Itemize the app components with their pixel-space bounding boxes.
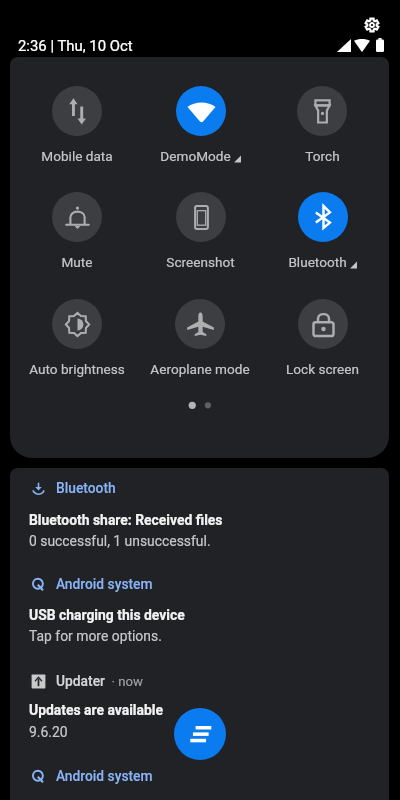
button[interactable]: DemoMode <box>139 86 261 172</box>
staticText: 0 successful, 1 unsuccessful. <box>29 533 211 549</box>
button[interactable]: Mobile data <box>16 86 138 172</box>
staticText: Updater <box>56 673 105 689</box>
staticText: Screenshot <box>166 254 235 270</box>
button[interactable]: Bluetooth <box>10 478 389 551</box>
button[interactable]: Settings <box>364 17 380 33</box>
staticText: Bluetooth <box>56 480 116 496</box>
staticText: Mute <box>61 254 93 270</box>
staticText: Android system <box>56 768 153 784</box>
button[interactable]: Manage notifications <box>174 708 226 760</box>
button[interactable]: Torch <box>261 86 383 172</box>
staticText: Android system <box>56 576 153 592</box>
button[interactable]: Auto brightness <box>16 299 138 385</box>
staticText: Updates are available <box>29 702 163 718</box>
staticText: Bluetooth share: Received files <box>29 512 223 528</box>
staticText: · now <box>105 674 143 689</box>
button[interactable]: Screenshot <box>139 192 261 278</box>
staticText: 9.6.20 <box>29 724 68 740</box>
staticText: Aeroplane mode <box>150 361 250 377</box>
staticText: 2:36 | Thu, 10 Oct <box>18 37 133 54</box>
staticText: Lock screen <box>286 361 359 377</box>
button[interactable]: Bluetooth <box>261 192 383 278</box>
staticText: USB charging this device <box>29 607 185 623</box>
staticText: Tap for more options. <box>29 628 162 644</box>
button[interactable]: Lock screen <box>261 299 383 385</box>
button[interactable]: Updater <box>10 671 389 742</box>
button[interactable]: Mute <box>16 192 138 278</box>
button[interactable]: Android system <box>10 766 389 792</box>
staticText: DemoMode <box>160 148 231 164</box>
staticText: Bluetooth <box>288 254 347 270</box>
staticText: Torch <box>305 148 340 164</box>
staticText: Mobile data <box>41 148 113 164</box>
staticText: Auto brightness <box>29 361 125 377</box>
button[interactable]: Aeroplane mode <box>139 299 261 385</box>
button[interactable]: Android system <box>10 574 389 646</box>
